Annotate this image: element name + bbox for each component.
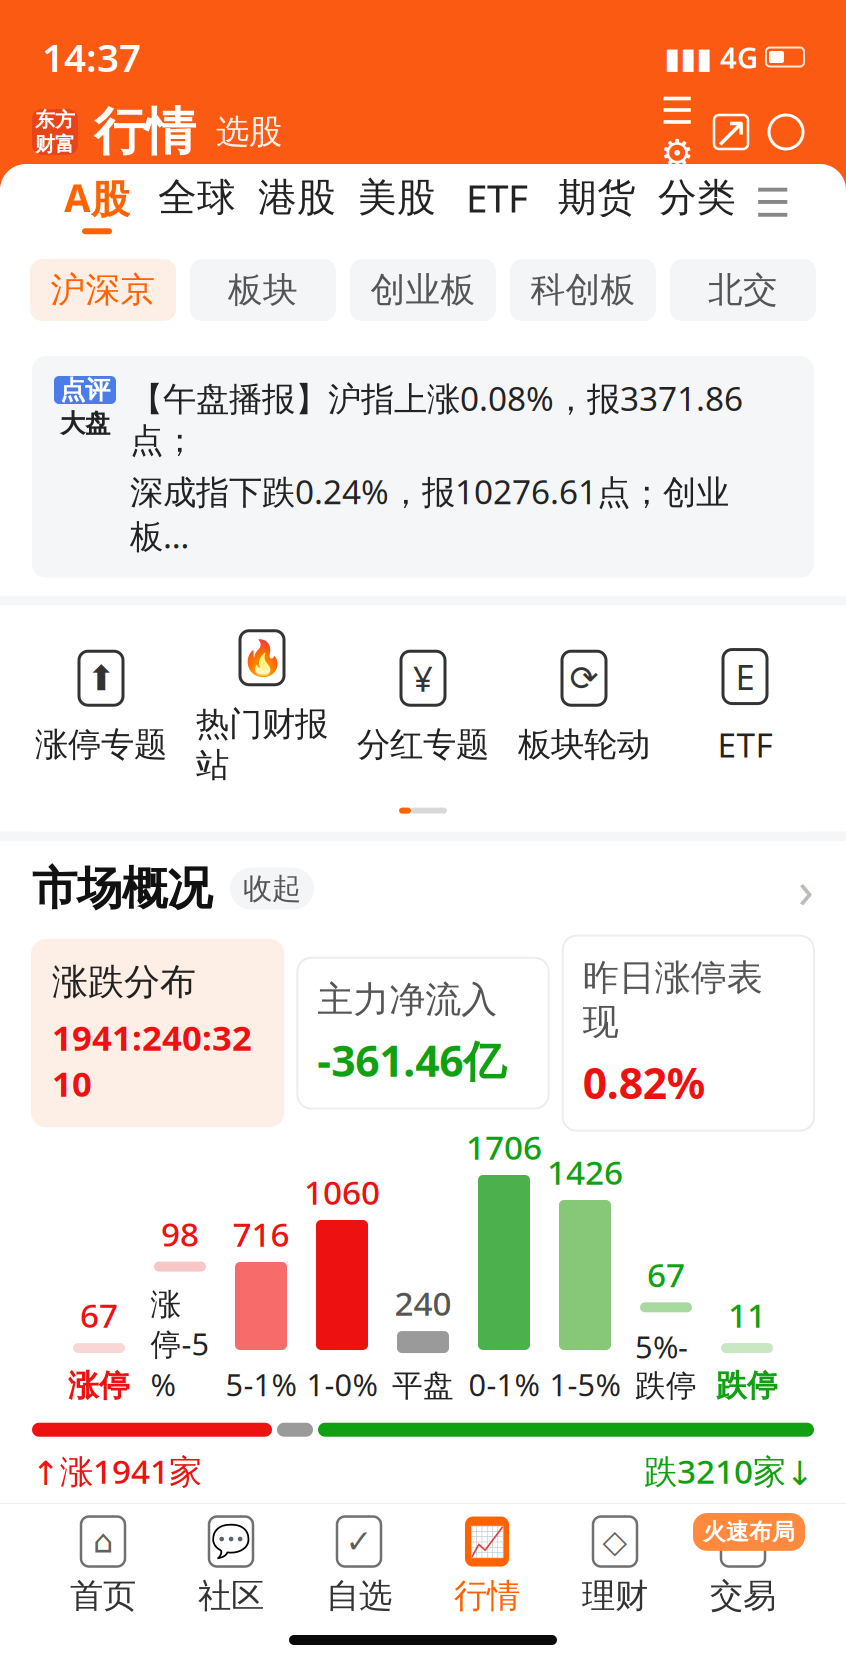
staticText: 选股: [216, 111, 282, 152]
staticText: 📈: [468, 1525, 505, 1558]
staticText: ⬆: [86, 658, 115, 698]
button[interactable]: 行情: [78, 101, 196, 163]
staticText: 深成指下跌0.24%，报10276.61点；创业板…: [130, 469, 729, 558]
staticText: ☰: [755, 180, 791, 226]
staticText: 67: [80, 1293, 118, 1337]
staticText: 东方 财富: [35, 107, 75, 156]
staticText: ◇: [602, 1523, 627, 1560]
staticText: 1706: [466, 1125, 542, 1169]
button[interactable]: 昨日涨停表现: [563, 936, 814, 1131]
staticText: 平盘: [392, 1367, 454, 1405]
button[interactable]: 搜索: [758, 104, 814, 160]
staticText: 主力净流入: [317, 978, 497, 1022]
staticText: 🔥: [240, 638, 283, 677]
button[interactable]: 💬: [167, 1513, 295, 1619]
button[interactable]: 更多分类: [747, 173, 799, 233]
button[interactable]: ETF: [447, 168, 547, 238]
button[interactable]: 📈: [423, 1513, 551, 1619]
staticText: 查看更多 ›: [353, 1611, 493, 1663]
staticText: ▮▮▮ 4G: [664, 37, 758, 76]
staticText: ☰⚙: [660, 90, 693, 174]
button[interactable]: +: [679, 1513, 807, 1619]
button[interactable]: ⬆: [20, 648, 181, 765]
button[interactable]: 点评: [0, 338, 846, 596]
staticText: ↑涨1941家: [32, 1449, 202, 1493]
button[interactable]: 创业板: [350, 259, 496, 321]
staticText: 期货: [558, 174, 636, 221]
staticText: ETF: [466, 172, 528, 223]
staticText: 昨日涨停表现: [583, 956, 763, 1044]
button[interactable]: ◇: [551, 1513, 679, 1619]
staticText: 创业板: [370, 269, 475, 311]
staticText: 1-0%: [306, 1364, 377, 1405]
staticText: 1941:240:3210: [52, 1014, 252, 1106]
staticText: ⌂: [93, 1523, 113, 1560]
staticText: 火速布局: [703, 1518, 795, 1546]
staticText: 67: [647, 1252, 685, 1296]
button[interactable]: 东方财富: [32, 109, 78, 155]
button[interactable]: 全球: [147, 168, 247, 238]
staticText: ⟳: [569, 658, 598, 698]
button[interactable]: 北交: [670, 259, 816, 321]
staticText: ¥: [413, 655, 433, 701]
staticText: 0.82%: [583, 1054, 705, 1111]
staticText: 首页: [70, 1575, 136, 1616]
staticText: A股: [64, 172, 130, 223]
staticText: 行情: [454, 1575, 520, 1616]
staticText: 收起: [243, 871, 301, 907]
staticText: 全球: [158, 174, 236, 221]
staticText: 大盘: [60, 408, 110, 439]
staticText: 1426: [547, 1150, 623, 1194]
button[interactable]: 查看更多 ›: [345, 1631, 501, 1663]
button[interactable]: A股: [47, 168, 147, 238]
staticText: 跌3210家↓: [644, 1449, 814, 1493]
button[interactable]: ¥: [342, 648, 503, 765]
button[interactable]: ⟳: [503, 648, 664, 765]
staticText: 点评: [60, 374, 110, 405]
staticText: 11: [728, 1293, 766, 1337]
staticText: ✓: [345, 1523, 372, 1560]
staticText: 板块: [228, 269, 298, 311]
button[interactable]: ✓: [295, 1513, 423, 1619]
button[interactable]: 涨跌分布: [32, 940, 283, 1126]
staticText: 98: [161, 1211, 199, 1256]
button[interactable]: 选股: [196, 111, 282, 152]
staticText: 社区: [198, 1575, 264, 1616]
button[interactable]: 港股: [247, 168, 347, 238]
button[interactable]: 分类: [647, 168, 747, 238]
button[interactable]: 美股: [347, 168, 447, 238]
button[interactable]: 市场概况: [0, 842, 846, 936]
staticText: 【午盘播报】沪指上涨0.08%，报3371.86点；: [130, 376, 743, 461]
staticText: +: [734, 1520, 752, 1563]
staticText: 💬: [211, 1523, 251, 1560]
staticText: ›: [798, 855, 814, 922]
button[interactable]: 板块: [190, 259, 336, 321]
staticText: 5-1%: [225, 1364, 296, 1405]
staticText: E: [735, 653, 754, 699]
staticText: 涨停专题: [35, 724, 167, 765]
staticText: 沪深京: [50, 269, 155, 311]
staticText: 港股: [258, 174, 336, 221]
button[interactable]: 设置: [650, 105, 704, 159]
button[interactable]: 科创板: [510, 259, 656, 321]
button[interactable]: 主力净流入: [297, 958, 549, 1109]
staticText: 跌停: [716, 1367, 778, 1405]
button[interactable]: ⌂: [39, 1513, 167, 1619]
staticText: 缩量-73亿 -0.63%: [645, 1511, 816, 1607]
button[interactable]: 期货: [547, 168, 647, 238]
button[interactable]: 沪深京: [30, 259, 176, 321]
staticText: 240: [394, 1281, 451, 1325]
staticText: 市场概况: [32, 861, 212, 916]
staticText: 716: [232, 1212, 289, 1256]
staticText: 分类: [658, 174, 736, 221]
staticText: 板块轮动: [518, 724, 650, 765]
staticText: 涨停-5%: [150, 1286, 209, 1405]
staticText: 1060: [304, 1170, 380, 1214]
staticText: -361.46亿: [317, 1032, 506, 1089]
button[interactable]: E: [664, 646, 825, 767]
staticText: 5%-跌停: [635, 1326, 697, 1405]
button[interactable]: 分享: [704, 105, 758, 159]
staticText: 理财: [582, 1575, 648, 1616]
button[interactable]: 🔥: [181, 628, 342, 786]
staticText: 两市成交总额 11590亿: [30, 1535, 405, 1583]
